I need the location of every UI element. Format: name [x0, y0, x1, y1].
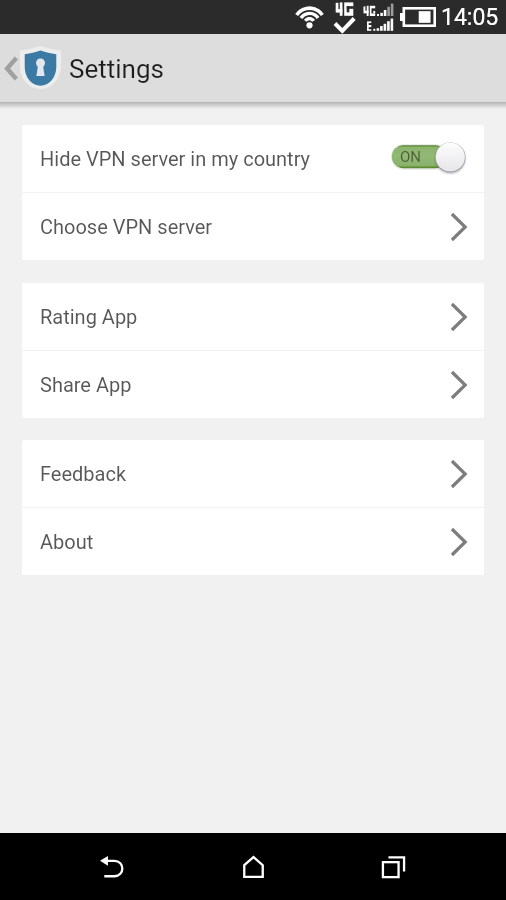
- staticText: ON: [400, 148, 422, 166]
- staticText: 14:05: [441, 4, 499, 31]
- staticText: Settings: [69, 54, 164, 84]
- staticText: Hide VPN server in my country: [40, 147, 311, 170]
- button[interactable]: Back: [42, 833, 182, 900]
- button[interactable]: Choose VPN server: [22, 193, 484, 260]
- button[interactable]: Share App: [22, 351, 484, 418]
- staticText: Rating App: [40, 305, 138, 328]
- staticText: Share App: [40, 373, 132, 396]
- staticText: Choose VPN server: [40, 215, 213, 238]
- button[interactable]: Back: [0, 34, 22, 102]
- staticText: About: [40, 530, 94, 553]
- button[interactable]: Feedback: [22, 440, 484, 507]
- staticText: Feedback: [40, 462, 127, 485]
- button[interactable]: Home: [183, 833, 323, 900]
- button[interactable]: About: [22, 508, 484, 575]
- button[interactable]: Hide VPN server in my country: [22, 125, 484, 192]
- button[interactable]: Rating App: [22, 283, 484, 350]
- button[interactable]: Recents: [323, 833, 463, 900]
